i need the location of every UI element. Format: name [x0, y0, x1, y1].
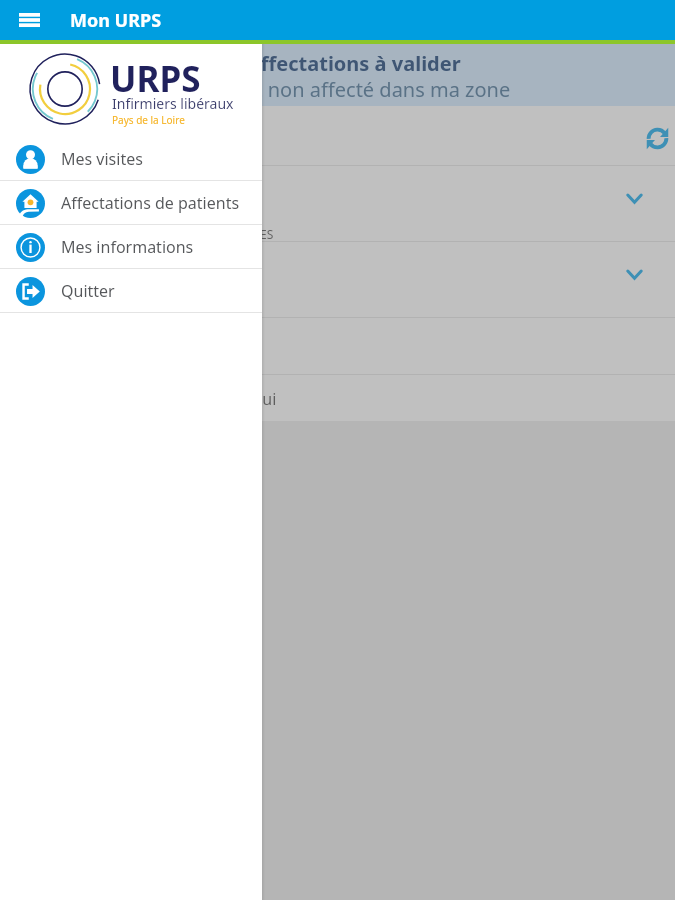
staticText: 32 rue du Calvaire - 44000 NANTES — [78, 226, 274, 242]
button[interactable]: Mes visites — [0, 137, 262, 180]
staticText: Patient non affecté dans ma zone — [196, 76, 511, 103]
staticText: Infirmiers libéraux — [112, 94, 234, 113]
staticText: LEBLANC Marie — [58, 182, 182, 205]
staticText: Mes informations — [61, 236, 194, 258]
staticText: Mes visites — [61, 148, 143, 170]
staticText: URPS — [110, 55, 201, 103]
staticText: Quitter — [61, 280, 115, 302]
staticText: Visites du jour : Aujourd'hui — [70, 388, 277, 410]
button[interactable]: Ouvrir le menu — [11, 0, 47, 40]
staticText: 8 bd Victor Hugo - 49000 ANGERS — [66, 302, 255, 318]
button[interactable]: Mes informations — [0, 225, 262, 268]
button[interactable]: Quitter — [0, 269, 262, 312]
button[interactable]: LEBLANC Marie — [0, 166, 675, 241]
staticText: Affectations de patients — [61, 192, 240, 214]
button[interactable]: MARTIN Paul — [0, 242, 675, 317]
staticText: Pays de la Loire — [112, 113, 185, 127]
staticText: MARTIN Paul — [58, 258, 163, 281]
button[interactable]: Affectations de patients — [0, 181, 262, 224]
staticText: Affectations à valider — [247, 50, 461, 77]
staticText: Mon URPS — [70, 8, 162, 33]
button[interactable]: Rafraîchir — [636, 115, 675, 155]
